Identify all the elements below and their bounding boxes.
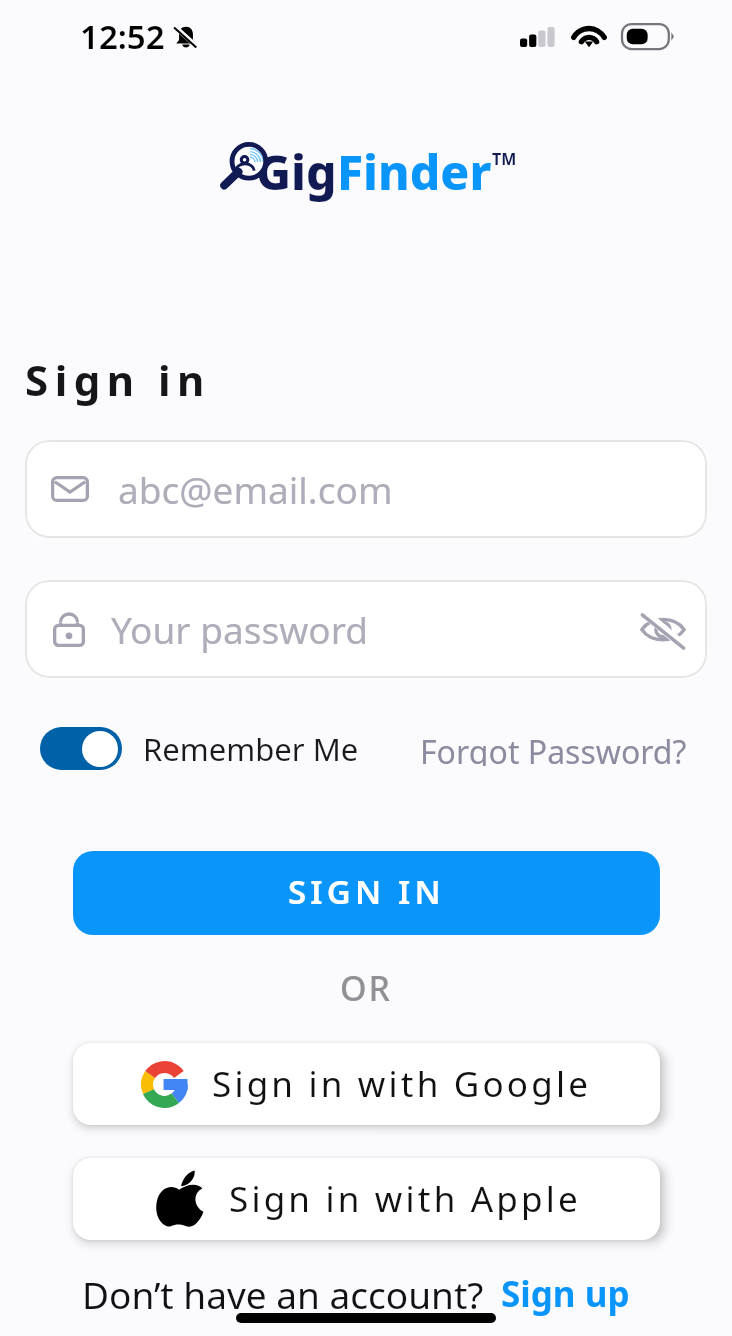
staticText: Your password (111, 604, 368, 654)
staticText: Sign in (25, 351, 211, 408)
button[interactable]: Sign up (494, 1264, 637, 1324)
button[interactable]: SIGN IN (73, 851, 660, 935)
staticText: Remember Me (143, 728, 359, 770)
button[interactable]: Forgot Password? (420, 722, 687, 774)
button[interactable]: Sign in with Google (73, 1043, 660, 1125)
button[interactable]: Remember me, on (40, 727, 359, 770)
staticText: Sign up (501, 1270, 630, 1318)
staticText: OR (0, 965, 732, 1011)
staticText: TM (492, 148, 517, 170)
staticText: Don’t have an account? (82, 1269, 484, 1319)
button[interactable]: Show password (637, 602, 689, 656)
staticText: Forgot Password? (420, 730, 687, 766)
staticText: Sign in with Apple (229, 1175, 581, 1223)
staticText: Finder (337, 139, 492, 204)
staticText: Gig (256, 139, 337, 204)
other: Remember me, on (40, 727, 122, 770)
button[interactable]: abc@email.com (25, 440, 707, 538)
staticText: abc@email.com (118, 464, 393, 514)
button[interactable]: Sign in with Apple (73, 1158, 660, 1240)
staticText: 12:52 (80, 14, 165, 59)
staticText: SIGN IN (288, 869, 445, 914)
button[interactable]: Your password (25, 580, 707, 678)
staticText: Sign in with Google (212, 1060, 592, 1108)
